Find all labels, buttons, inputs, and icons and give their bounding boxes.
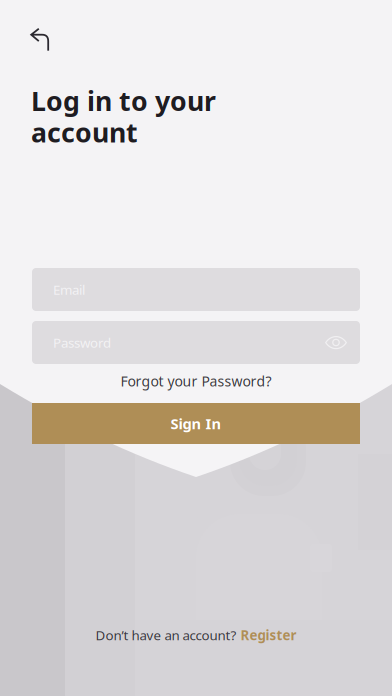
button[interactable]: Back (20, 18, 60, 62)
staticText: Email (53, 281, 85, 298)
staticText: Don’t have an account? (95, 626, 236, 644)
staticText: Log in to your (31, 83, 216, 118)
staticText: account (31, 114, 138, 150)
button[interactable]: Sign In (32, 403, 360, 444)
staticText: Register (240, 626, 296, 644)
staticText: Password (53, 334, 111, 351)
staticText: Forgot your Password? (120, 371, 271, 391)
button[interactable]: Register (240, 626, 296, 644)
button[interactable]: Forgot your Password? (120, 368, 271, 394)
staticText: Sign In (170, 414, 221, 433)
